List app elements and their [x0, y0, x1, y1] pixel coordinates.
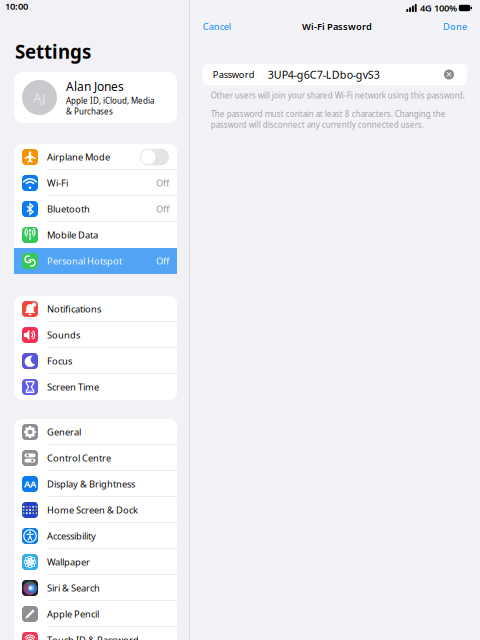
staticText: Touch ID & Password: [47, 634, 139, 640]
staticText: Apple Pencil: [47, 608, 99, 620]
staticText: Password: [213, 68, 255, 81]
button[interactable]: Sounds: [14, 322, 177, 348]
staticText: 3UP4-g6C7-LDbo-gvS3: [268, 67, 380, 82]
staticText: Sounds: [47, 329, 80, 341]
staticText: Alan Jones: [66, 78, 124, 94]
staticText: Home Screen & Dock: [47, 504, 138, 516]
staticText: General: [47, 426, 81, 438]
staticText: Apple ID, iCloud, Media & Purchases: [66, 95, 154, 116]
staticText: Display & Brightness: [47, 478, 135, 490]
staticText: Airplane Mode: [47, 151, 110, 163]
staticText: Wi-Fi Password: [302, 20, 372, 33]
button[interactable]: Done: [443, 20, 467, 33]
staticText: Wallpaper: [47, 556, 90, 568]
staticText: Bluetooth: [47, 203, 90, 215]
button[interactable]: Apple Pencil: [14, 601, 177, 627]
staticText: The password must contain at least 8 cha…: [211, 109, 446, 130]
staticText: Personal Hotspot: [47, 255, 122, 267]
staticText: Off: [156, 203, 169, 215]
button[interactable]: Wallpaper: [14, 549, 177, 575]
button[interactable]: Home Screen & Dock: [14, 497, 177, 523]
button[interactable]: Notifications: [14, 296, 177, 322]
button[interactable]: Cancel: [203, 20, 231, 33]
staticText: Notifications: [47, 303, 101, 315]
staticText: AJ: [33, 89, 46, 106]
button[interactable]: Focus: [14, 348, 177, 374]
staticText: Done: [443, 20, 467, 33]
staticText: 10:00: [5, 0, 28, 12]
button[interactable]: Accessibility: [14, 523, 177, 549]
staticText: Other users will join your shared Wi-Fi …: [211, 90, 465, 101]
staticText: Off: [156, 177, 169, 189]
staticText: Siri & Search: [47, 582, 100, 594]
staticText: ✕: [445, 70, 452, 79]
staticText: AA: [24, 478, 36, 490]
staticText: Screen Time: [47, 381, 99, 393]
button[interactable]: Clear text: [444, 69, 454, 79]
staticText: Wi-Fi: [47, 177, 68, 189]
button[interactable]: Touch ID & Password: [14, 627, 177, 640]
staticText: Focus: [47, 355, 72, 367]
button[interactable]: Airplane Mode: [14, 144, 177, 170]
button[interactable]: General: [14, 419, 177, 445]
button[interactable]: Control Centre: [14, 445, 177, 471]
button[interactable]: Mobile Data: [14, 222, 177, 248]
staticText: Settings: [15, 39, 91, 64]
button[interactable]: AA: [14, 471, 177, 497]
staticText: Cancel: [203, 20, 231, 33]
button[interactable]: Wi-Fi: [14, 170, 177, 196]
staticText: Control Centre: [47, 452, 111, 464]
button[interactable]: Bluetooth: [14, 196, 177, 222]
button[interactable]: Personal Hotspot: [14, 248, 177, 274]
staticText: Off: [156, 255, 169, 267]
button[interactable]: Siri & Search: [14, 575, 177, 601]
button[interactable]: Screen Time: [14, 374, 177, 400]
staticText: Mobile Data: [47, 229, 98, 241]
staticText: Accessibility: [47, 530, 96, 542]
staticText: 4G 100%: [420, 2, 457, 14]
button[interactable]: AJ: [14, 72, 177, 123]
